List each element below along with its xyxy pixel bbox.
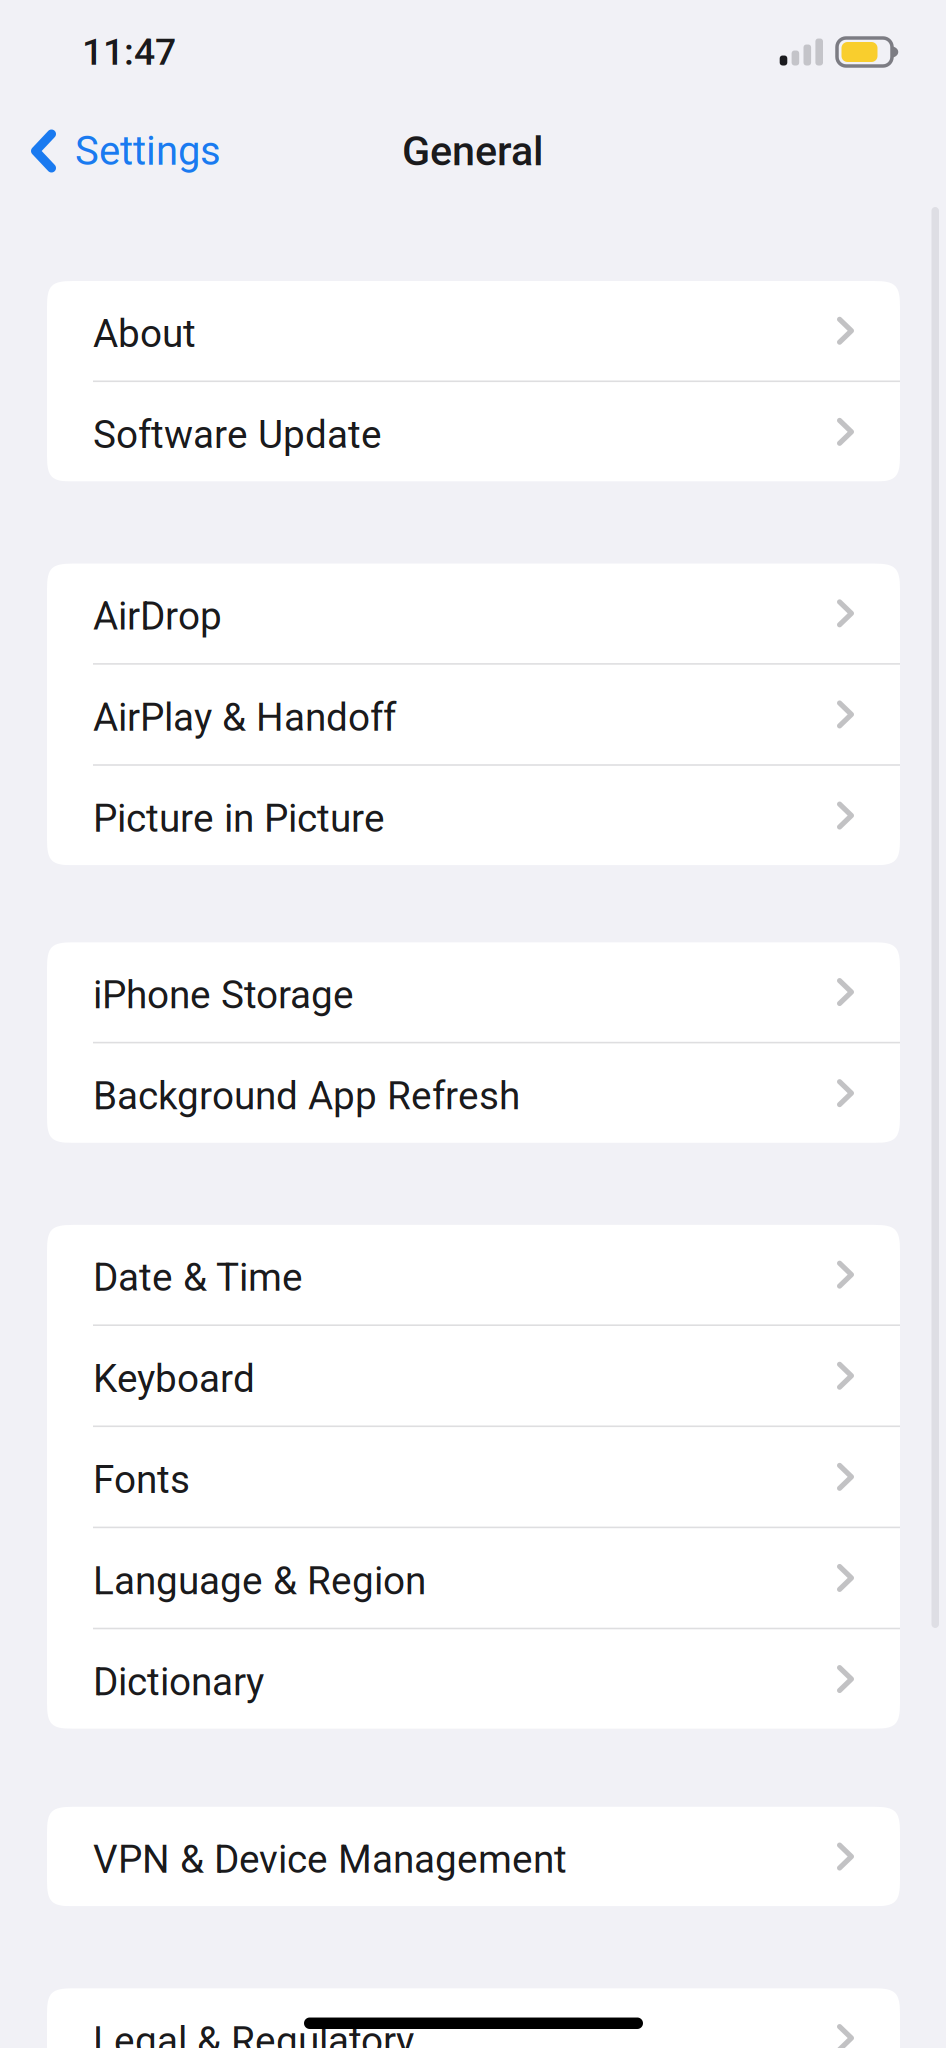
- staticText: Date & Time: [93, 1255, 303, 1300]
- button[interactable]: VPN & Device Management: [47, 1807, 900, 1906]
- button[interactable]: Fonts: [47, 1427, 900, 1527]
- button[interactable]: Date & Time: [47, 1225, 900, 1324]
- button[interactable]: AirDrop: [47, 564, 900, 663]
- staticText: Background App Refresh: [93, 1073, 520, 1119]
- button[interactable]: Picture in Picture: [47, 766, 900, 865]
- button[interactable]: Dictionary: [47, 1629, 900, 1729]
- staticText: Keyboard: [93, 1356, 255, 1401]
- button[interactable]: Keyboard: [47, 1326, 900, 1425]
- staticText: General: [402, 127, 544, 175]
- staticText: 11:47: [82, 30, 176, 74]
- button[interactable]: iPhone Storage: [47, 942, 900, 1042]
- staticText: Picture in Picture: [93, 796, 385, 841]
- button[interactable]: Software Update: [47, 382, 900, 482]
- button[interactable]: AirPlay & Handoff: [47, 665, 900, 764]
- staticText: Software Update: [93, 412, 382, 457]
- button[interactable]: Settings: [0, 111, 237, 191]
- button[interactable]: Background App Refresh: [47, 1043, 900, 1143]
- staticText: VPN & Device Management: [93, 1837, 567, 1882]
- staticText: Dictionary: [93, 1659, 264, 1705]
- staticText: About: [93, 311, 196, 356]
- staticText: Settings: [75, 128, 221, 174]
- button[interactable]: Legal & Regulatory: [47, 1988, 900, 2048]
- button[interactable]: Language & Region: [47, 1528, 900, 1628]
- staticText: Legal & Regulatory: [93, 2018, 414, 2048]
- button[interactable]: About: [47, 281, 900, 380]
- staticText: AirPlay & Handoff: [93, 695, 396, 740]
- staticText: iPhone Storage: [93, 972, 354, 1018]
- staticText: AirDrop: [93, 594, 222, 639]
- staticText: Fonts: [93, 1457, 190, 1502]
- staticText: Language & Region: [93, 1558, 426, 1604]
